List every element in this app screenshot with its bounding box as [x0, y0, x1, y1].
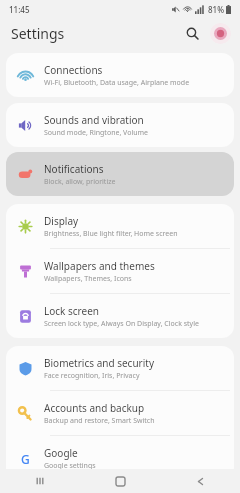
button[interactable]: Recents	[20, 469, 60, 493]
button[interactable]: Accounts and backup	[6, 391, 234, 435]
staticText: Connections	[44, 63, 103, 77]
staticText: Display	[44, 214, 79, 228]
staticText: Google	[44, 446, 78, 460]
staticText: Screen lock type, Always On Display, Clo…	[44, 319, 199, 329]
staticText: Wallpapers, Themes, Icons	[44, 274, 132, 284]
button[interactable]: Notifications	[6, 152, 234, 196]
staticText: Google settings	[44, 461, 96, 471]
button[interactable]: Account	[210, 23, 231, 44]
staticText: Block, allow, prioritize	[44, 177, 116, 187]
staticText: Biometrics and security	[44, 356, 154, 370]
staticText: Sound mode, Ringtone, Volume	[44, 128, 149, 138]
button[interactable]: Lock screen	[6, 294, 234, 338]
staticText: Sounds and vibration	[44, 113, 144, 127]
button[interactable]: Connections	[6, 53, 234, 97]
staticText: Wallpapers and themes	[44, 259, 155, 273]
staticText: Lock screen	[44, 304, 100, 318]
button[interactable]: Display	[6, 204, 234, 248]
button[interactable]: Wallpapers and themes	[6, 249, 234, 293]
staticText: Settings	[11, 24, 65, 43]
button[interactable]: Sounds and vibration	[6, 103, 234, 147]
staticText: Backup and restore, Smart Switch	[44, 416, 155, 426]
staticText: 11:45	[9, 4, 30, 15]
staticText: 81%	[208, 4, 224, 15]
staticText: Brightness, Blue light filter, Home scre…	[44, 229, 178, 239]
staticText: Notifications	[44, 162, 104, 176]
button[interactable]: G	[6, 436, 234, 480]
staticText: Accounts and backup	[44, 401, 145, 415]
button[interactable]: Search	[180, 21, 204, 45]
staticText: Face recognition, Iris, Privacy	[44, 371, 140, 381]
button[interactable]: Home	[100, 469, 140, 493]
staticText: Wi-Fi, Bluetooth, Data usage, Airplane m…	[44, 78, 190, 88]
button[interactable]: Back	[180, 469, 220, 493]
staticText: G	[21, 451, 30, 466]
button[interactable]: Biometrics and security	[6, 346, 234, 390]
